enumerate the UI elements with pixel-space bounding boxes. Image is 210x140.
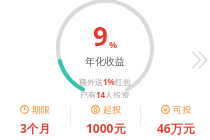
button[interactable]: More (190, 48, 210, 72)
staticText: 3个月 (20, 120, 51, 136)
staticText: 期限 (32, 104, 50, 115)
staticText: 可投 (173, 104, 191, 115)
staticText: % (109, 38, 118, 50)
button[interactable]: 起投 (71, 98, 140, 140)
staticText: 46万元 (157, 120, 195, 136)
staticText: 已有14人投资 (80, 89, 130, 98)
button[interactable]: 9 (55, 0, 155, 98)
staticText: 1000元 (86, 120, 126, 136)
button[interactable]: 可投 (141, 98, 210, 140)
staticText: 起投 (103, 104, 121, 115)
staticText: 9 (93, 18, 108, 53)
staticText: 年化收益 (85, 55, 125, 68)
button[interactable]: 期限 (0, 98, 70, 140)
staticText: 额外送1%红包 (79, 76, 131, 87)
